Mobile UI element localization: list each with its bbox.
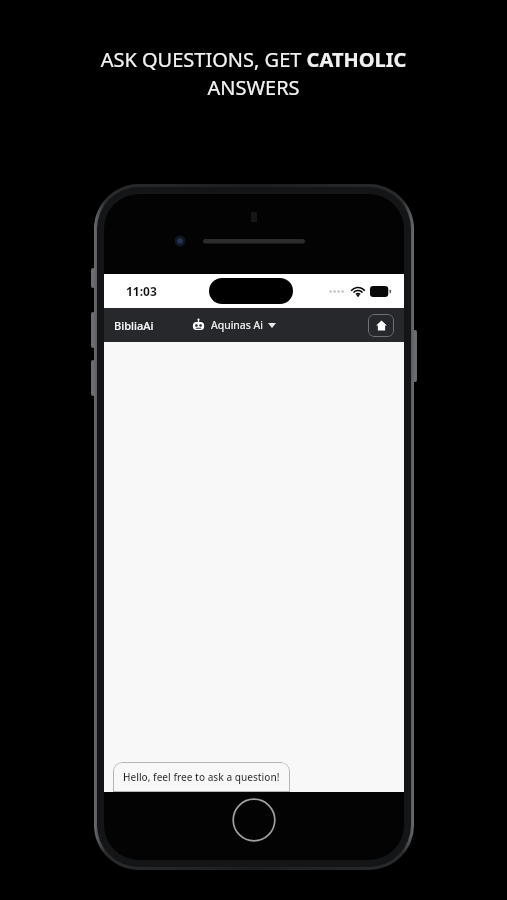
button[interactable]: BibliaAi [114, 318, 154, 333]
button[interactable]: Home button [232, 798, 276, 842]
button[interactable]: Home [368, 314, 394, 337]
button[interactable]: Aquinas Ai [192, 318, 276, 332]
button[interactable]: Hello, feel free to ask a question! [113, 762, 290, 792]
staticText: Aquinas Ai [211, 318, 263, 332]
staticText: Hello, feel free to ask a question! [123, 770, 280, 784]
staticText: ASK QUESTIONS, GET CATHOLIC ANSWERS [24, 46, 483, 101]
staticText: 11:03 [126, 283, 157, 299]
